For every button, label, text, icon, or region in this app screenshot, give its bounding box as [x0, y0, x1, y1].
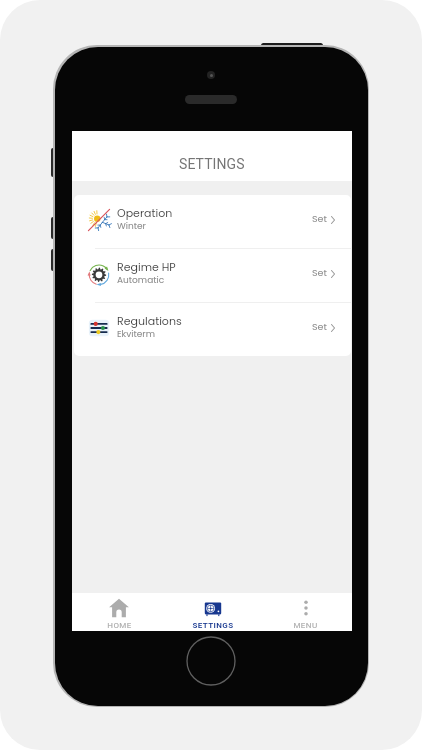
staticText: Ekviterm [117, 328, 155, 341]
staticText: Operation [117, 205, 173, 220]
staticText: Winter [117, 220, 146, 233]
button[interactable]: Regime HP [74, 249, 351, 302]
staticText: SETTINGS [179, 156, 245, 172]
button[interactable]: Operation [74, 195, 351, 248]
other: Settings [203, 598, 223, 618]
staticText: Regime HP [117, 259, 176, 274]
button[interactable]: Settings [166, 593, 259, 631]
staticText: Regulations [117, 313, 182, 328]
staticText: Set [312, 320, 327, 333]
other: Menu [296, 598, 316, 618]
other: Home [109, 598, 129, 618]
staticText: MENU [293, 621, 318, 630]
staticText: Automatic [117, 274, 165, 287]
staticText: SETTINGS [192, 621, 234, 630]
staticText: HOME [107, 621, 132, 630]
button[interactable]: Regulations [74, 303, 351, 356]
button[interactable]: Home [72, 593, 166, 631]
button[interactable]: Menu [259, 593, 352, 631]
staticText: Set [312, 266, 327, 279]
staticText: Set [312, 212, 327, 225]
